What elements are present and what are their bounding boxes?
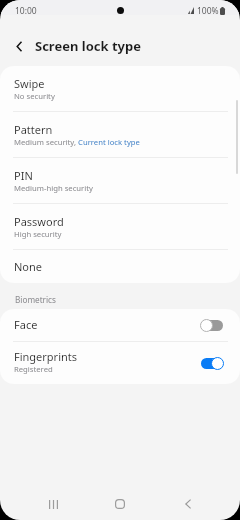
staticText: Medium-high security xyxy=(14,183,93,193)
button[interactable]: None xyxy=(0,250,240,283)
staticText: Biometrics xyxy=(15,294,56,305)
staticText: Screen lock type xyxy=(35,37,141,55)
staticText: 100% xyxy=(197,5,219,17)
button[interactable]: Fingerprints on xyxy=(200,357,224,370)
staticText: 10:00 xyxy=(15,5,37,17)
button[interactable]: Fingerprints xyxy=(0,342,240,384)
button[interactable]: PIN xyxy=(0,158,240,204)
staticText: Pattern xyxy=(14,122,53,137)
staticText: Medium security, Current lock type xyxy=(14,137,140,147)
staticText: Registered xyxy=(14,364,53,374)
button[interactable]: Back xyxy=(173,489,203,519)
staticText: None xyxy=(14,259,43,274)
button[interactable]: Swipe xyxy=(0,66,240,112)
button[interactable]: Face off xyxy=(200,319,224,332)
staticText: Fingerprints xyxy=(14,349,78,364)
staticText: Password xyxy=(14,214,64,229)
button[interactable]: Face xyxy=(0,309,240,342)
staticText: High security xyxy=(14,229,62,239)
button[interactable]: Pattern xyxy=(0,112,240,158)
staticText: PIN xyxy=(14,168,33,183)
staticText: Face xyxy=(14,317,38,332)
button[interactable]: Home xyxy=(105,489,135,519)
staticText: Swipe xyxy=(14,76,45,91)
button[interactable]: Navigate up xyxy=(6,33,32,59)
staticText: No security xyxy=(14,91,55,101)
button[interactable]: Password xyxy=(0,204,240,250)
button[interactable]: Recents xyxy=(38,489,68,519)
